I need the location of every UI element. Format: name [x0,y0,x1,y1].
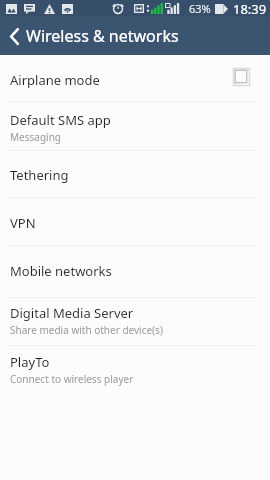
staticText: Wireless & networks [26,25,179,47]
staticText: 18:39 [233,0,267,17]
staticText: Messaging [10,130,61,144]
button[interactable]: Airplane mode toggle [228,64,254,90]
staticText: Connect to wireless player [10,372,134,386]
staticText: Default SMS app [10,111,111,129]
staticText: Share media with other device(s) [10,323,163,337]
staticText: Airplane mode [10,71,100,89]
button[interactable]: Mobile networks [0,246,270,298]
staticText: Mobile networks [10,262,112,280]
staticText: Digital Media Server [10,304,134,322]
staticText: Tethering [10,166,69,184]
button[interactable]: Airplane mode [0,55,270,102]
button[interactable]: Digital Media Server [0,298,270,346]
button[interactable]: PlayTo [0,346,270,396]
staticText: VPN [10,214,36,232]
button[interactable]: VPN [0,198,270,246]
staticText: 63% [189,1,211,16]
button[interactable]: Tethering [0,151,270,198]
button[interactable]: Navigate up [1,17,27,55]
button[interactable]: Default SMS app [0,102,270,151]
staticText: PlayTo [10,353,50,371]
